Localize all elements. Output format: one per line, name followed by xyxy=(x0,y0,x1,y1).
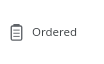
staticText: Ordered xyxy=(32,24,78,40)
other: Ordered xyxy=(10,24,23,41)
button[interactable]: Ordered xyxy=(0,0,104,64)
